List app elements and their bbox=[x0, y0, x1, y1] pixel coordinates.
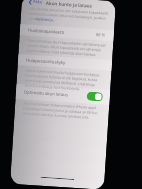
staticText: Huoltokapasiteetti bbox=[28, 28, 65, 36]
staticText: Tämä ilmoittaa akun kapasiteetin verratt… bbox=[27, 38, 106, 48]
staticText: Akun kunto perustuu sen nykyiseen kapasi… bbox=[29, 6, 108, 16]
staticText: Akku bbox=[33, 0, 43, 5]
staticText: varaus. bbox=[29, 16, 42, 21]
staticText: lataamisen kanssa, kunnes tarvitset sitä… bbox=[22, 110, 90, 120]
staticText: Akkusi tukee normaalia huippusuorituskyk… bbox=[25, 67, 100, 77]
button[interactable]: Optimoitu akun lataus bbox=[15, 84, 110, 105]
staticText: laite ei ole sammunut äkillisesti. Lisät… bbox=[25, 77, 96, 87]
button[interactable]: Back to Akku bbox=[22, 0, 46, 7]
staticText: käytön aikana, mikä lyhentää akun kestoa… bbox=[26, 48, 97, 57]
button[interactable]: Lisätietoja... bbox=[36, 16, 56, 22]
button[interactable]: Huoltokapasiteetti bbox=[20, 24, 114, 41]
staticText: Akun kunto ja lataus bbox=[46, 0, 93, 9]
staticText: Suorituskyvyn hallinta ei ole käytössä, … bbox=[25, 72, 98, 82]
staticText: uuteen tilaan. Akun kapasiteetti voi väh… bbox=[27, 43, 101, 52]
staticText: 88 % bbox=[96, 32, 106, 39]
other: Optimoitu akun lataus bbox=[86, 92, 103, 102]
staticText: akun kunnosta ja suorituskyvystä. bbox=[24, 82, 80, 91]
staticText: Akun kulumisen hidastamiseksi iPhone opp… bbox=[23, 100, 97, 110]
staticText: Optimoitu akun lataus bbox=[24, 89, 68, 98]
staticText: päivittäisen latausrytmisi ja odottaa yl… bbox=[23, 105, 98, 115]
staticText: suhteessa uuteen sekä suorituskykyyn, ja… bbox=[29, 11, 106, 21]
staticText: Huippusuorituskyky bbox=[26, 58, 66, 66]
